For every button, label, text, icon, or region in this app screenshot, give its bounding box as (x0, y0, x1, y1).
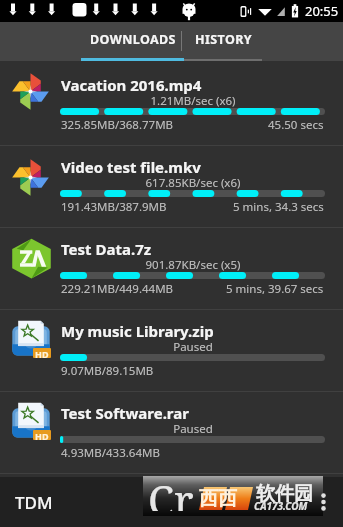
button[interactable]: HISTORY (184, 22, 262, 61)
staticText: 软件园 (256, 482, 313, 506)
staticText: HD (35, 348, 49, 358)
staticText: 西西 (199, 487, 237, 511)
button[interactable]: HD (0, 392, 343, 474)
staticText: 191.43MB/387.9MB (61, 199, 167, 215)
button[interactable]: More options (318, 492, 329, 512)
staticText: 617.85KB/sec (x6) (61, 175, 325, 191)
staticText: 5 mins, 39.67 secs (226, 281, 324, 297)
staticText: Test Data.7z (61, 239, 152, 259)
staticText: HD (35, 430, 49, 440)
staticText: TDM (15, 491, 53, 514)
button[interactable]: Video test file.mkv (0, 146, 343, 228)
button[interactable]: Vacation 2016.mp4 (0, 61, 343, 146)
staticText: 325.85MB/368.77MB (61, 117, 174, 133)
staticText: Vacation 2016.mp4 (61, 75, 202, 95)
staticText: Test Software.rar (61, 403, 189, 423)
staticText: 45.50 secs (268, 117, 324, 133)
staticText: Paused (61, 421, 325, 437)
button[interactable]: HD (0, 310, 343, 392)
staticText: DOWNLOADS (90, 31, 176, 48)
staticText: 229.21MB/449.44MB (61, 281, 174, 297)
staticText: Cr (148, 471, 194, 511)
staticText: 4.93MB/433.64MB (61, 445, 160, 461)
staticText: Video test file.mkv (61, 157, 201, 177)
staticText: 1.21MB/sec (x6) (61, 93, 325, 109)
button[interactable]: DOWNLOADS (81, 22, 184, 61)
staticText: HISTORY (195, 31, 252, 48)
staticText: 20:55 (305, 2, 339, 20)
staticText: My music Library.zip (61, 321, 214, 341)
staticText: Paused (61, 339, 325, 355)
staticText: CA173.COM (254, 499, 308, 513)
staticText: 5 mins, 34.3 secs (233, 199, 324, 215)
staticText: 9.07MB/89.15MB (61, 363, 154, 379)
staticText: 901.87KB/sec (x5) (61, 257, 325, 273)
button[interactable]: Test Data.7z (0, 228, 343, 310)
